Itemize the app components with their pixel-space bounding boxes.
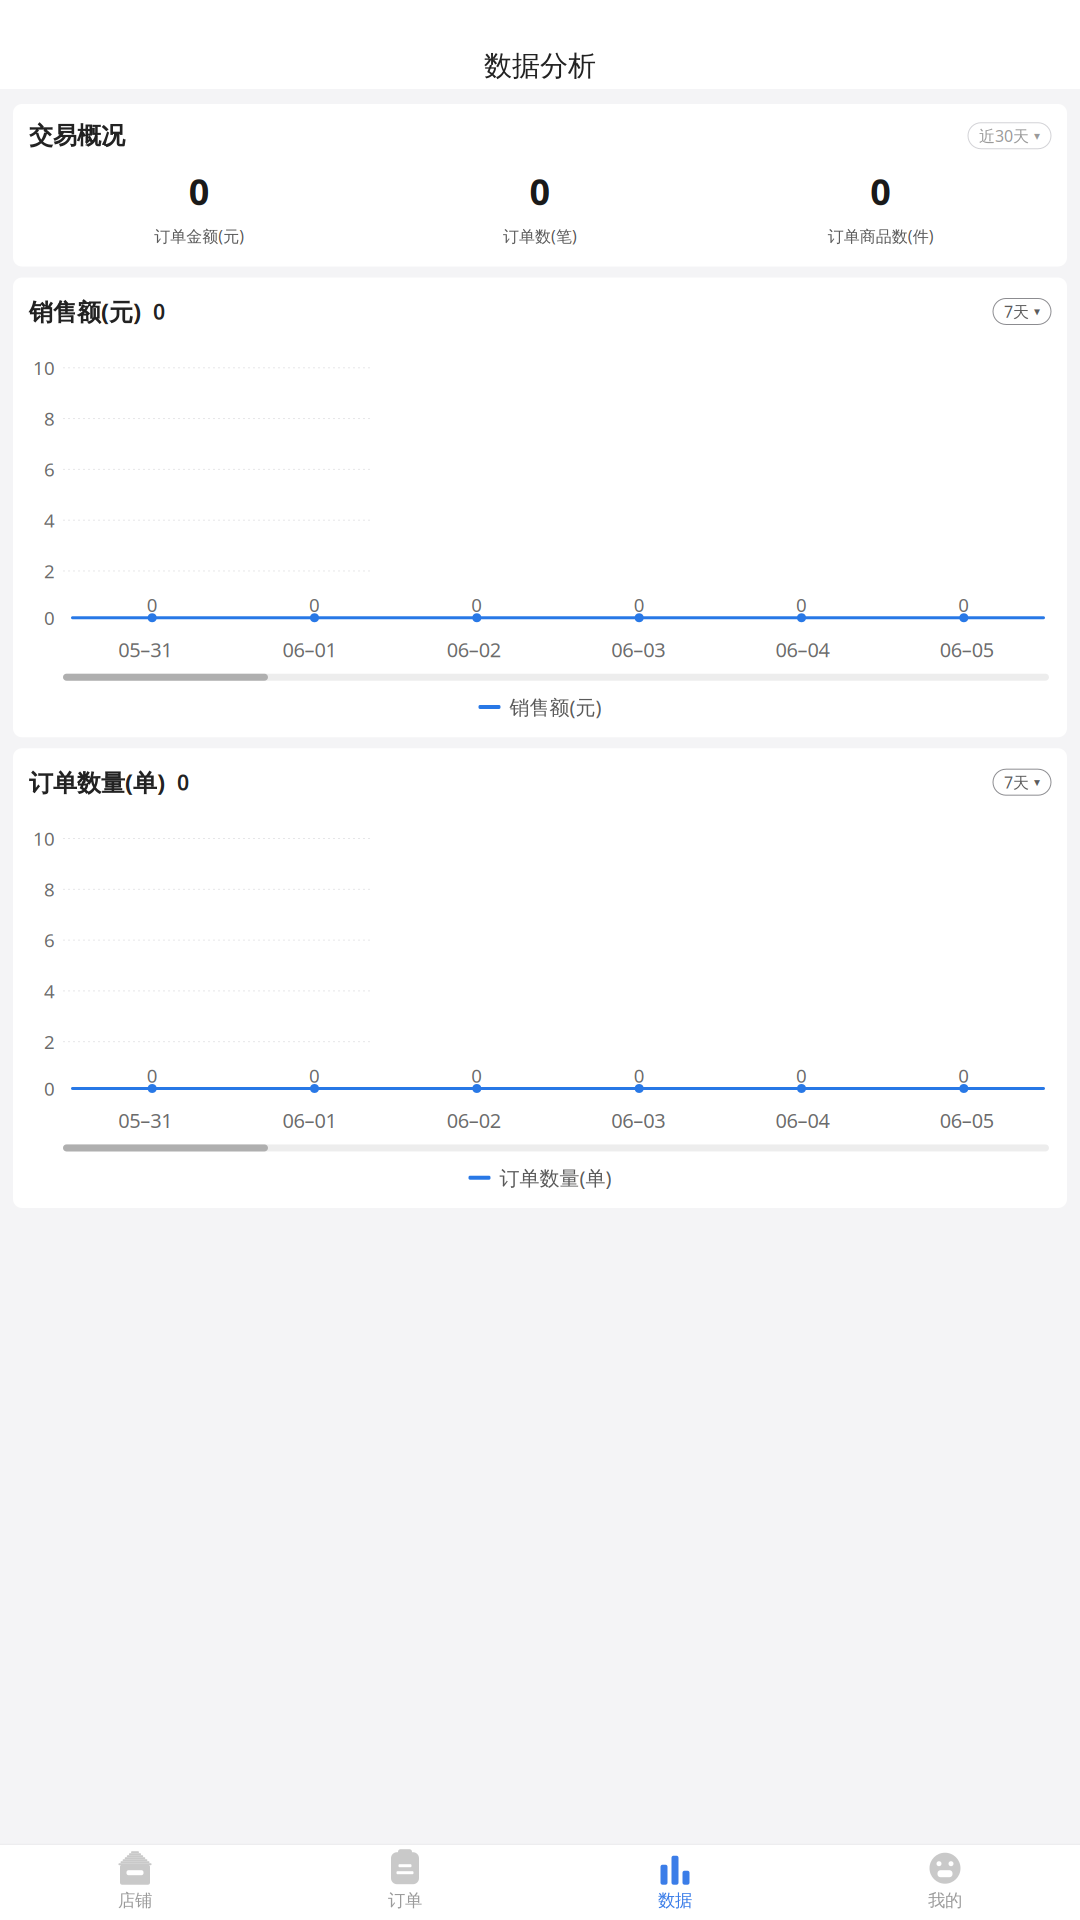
staticText: 订单商品数(件) bbox=[828, 225, 934, 246]
staticText: 10 bbox=[33, 826, 55, 851]
staticText: ▾ bbox=[1034, 129, 1040, 142]
staticText: 0 bbox=[147, 592, 158, 617]
staticText: 订单数量(单) bbox=[29, 766, 165, 798]
staticText: 0 bbox=[634, 592, 645, 617]
staticText: 7天 bbox=[1004, 772, 1029, 793]
staticText: 近30天 bbox=[979, 125, 1029, 146]
staticText: 05–31 bbox=[118, 636, 172, 663]
button[interactable]: 7天 bbox=[993, 298, 1051, 324]
staticText: 销售额(元) bbox=[29, 295, 141, 327]
staticText: 交易概况 bbox=[29, 121, 125, 150]
staticText: 0 bbox=[44, 605, 55, 630]
staticText: 06–03 bbox=[611, 1107, 665, 1133]
staticText: 06–01 bbox=[282, 636, 336, 663]
button[interactable]: 7天 bbox=[993, 769, 1051, 795]
staticText: 数据 bbox=[658, 1890, 692, 1911]
staticText: 06–05 bbox=[940, 636, 994, 663]
staticText: 0 bbox=[471, 592, 482, 617]
staticText: 0 bbox=[44, 1076, 55, 1101]
staticText: 0 bbox=[471, 1063, 482, 1088]
staticText: 06–02 bbox=[447, 1107, 501, 1133]
staticText: 订单数量(单) bbox=[499, 1164, 611, 1191]
staticText: 7天 bbox=[1004, 301, 1029, 322]
staticText: 0 bbox=[529, 167, 550, 215]
staticText: 店铺 bbox=[118, 1890, 152, 1911]
staticText: 0 bbox=[958, 1063, 969, 1088]
staticText: 0 bbox=[634, 1063, 645, 1088]
button[interactable]: 近30天 bbox=[968, 123, 1051, 149]
staticText: 06–04 bbox=[775, 1107, 829, 1133]
staticText: ▾ bbox=[1034, 775, 1040, 789]
staticText: 订单数(笔) bbox=[503, 225, 577, 246]
staticText: 数据分析 bbox=[484, 49, 596, 83]
staticText: 10 bbox=[33, 355, 55, 380]
staticText: 0 bbox=[309, 592, 320, 617]
staticText: 0 bbox=[309, 1063, 320, 1088]
button[interactable]: 我的 bbox=[810, 1845, 1080, 1920]
button[interactable]: 店铺 bbox=[0, 1845, 270, 1920]
staticText: 0 bbox=[141, 297, 165, 326]
staticText: 订单 bbox=[388, 1890, 422, 1911]
staticText: 2 bbox=[44, 559, 55, 583]
staticText: 我的 bbox=[928, 1890, 962, 1911]
staticText: 06–04 bbox=[775, 636, 829, 663]
staticText: 8 bbox=[44, 877, 55, 902]
staticText: 6 bbox=[44, 928, 55, 952]
staticText: 0 bbox=[958, 592, 969, 617]
staticText: 4 bbox=[44, 508, 55, 533]
staticText: 06–03 bbox=[611, 636, 665, 663]
button[interactable]: 数据 bbox=[540, 1845, 810, 1920]
staticText: 0 bbox=[165, 768, 189, 796]
staticText: 06–05 bbox=[940, 1107, 994, 1133]
staticText: 销售额(元) bbox=[509, 694, 601, 720]
staticText: 4 bbox=[44, 978, 55, 1003]
staticText: 0 bbox=[796, 592, 807, 617]
staticText: 0 bbox=[796, 1063, 807, 1088]
staticText: 0 bbox=[189, 167, 210, 215]
button[interactable]: 订单 bbox=[270, 1845, 540, 1920]
staticText: 05–31 bbox=[118, 1107, 172, 1133]
staticText: 0 bbox=[870, 167, 891, 215]
staticText: ▾ bbox=[1034, 305, 1040, 318]
staticText: 8 bbox=[44, 406, 55, 431]
staticText: 2 bbox=[44, 1029, 55, 1054]
staticText: 6 bbox=[44, 457, 55, 482]
staticText: 06–01 bbox=[282, 1107, 336, 1133]
staticText: 订单金额(元) bbox=[154, 225, 244, 246]
staticText: 06–02 bbox=[447, 636, 501, 663]
staticText: 0 bbox=[147, 1063, 158, 1088]
